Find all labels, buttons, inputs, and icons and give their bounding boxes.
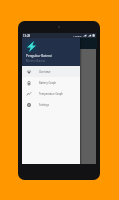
button[interactable]: Temperature Graph [22,88,80,99]
staticText: Overview [39,70,51,74]
staticText: Pengukur Baterai [26,54,52,58]
staticText: Monitor Baterai [26,59,46,63]
staticText: Battery Graph [39,81,57,85]
staticText: Temperature Graph [39,92,63,96]
other: App icon [26,41,37,52]
staticText: Settings [39,103,49,107]
staticText: 13:28 [23,34,31,38]
staticText: 1.6KB/s [73,34,82,37]
button[interactable]: Settings [22,99,80,110]
button[interactable]: Overview [22,66,80,77]
button[interactable]: Battery Graph [22,77,80,88]
